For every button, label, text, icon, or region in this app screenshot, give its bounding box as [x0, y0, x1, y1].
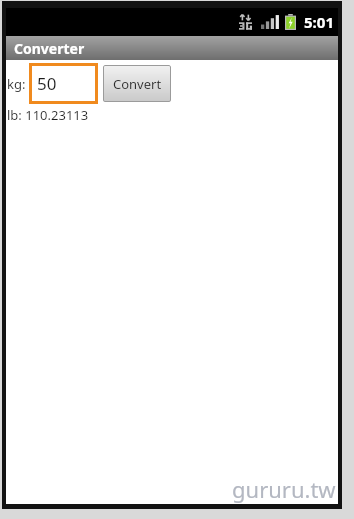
staticText: kg:	[7, 75, 26, 93]
button[interactable]: 50	[29, 63, 98, 104]
staticText: Convert	[113, 75, 162, 93]
staticText: 5:01	[304, 12, 334, 32]
staticText: lb: 110.23113	[7, 106, 89, 124]
button[interactable]: Convert	[103, 65, 171, 102]
staticText: Converter	[14, 39, 85, 58]
staticText: gururu.tw	[232, 474, 336, 504]
staticText: 50	[37, 72, 57, 95]
